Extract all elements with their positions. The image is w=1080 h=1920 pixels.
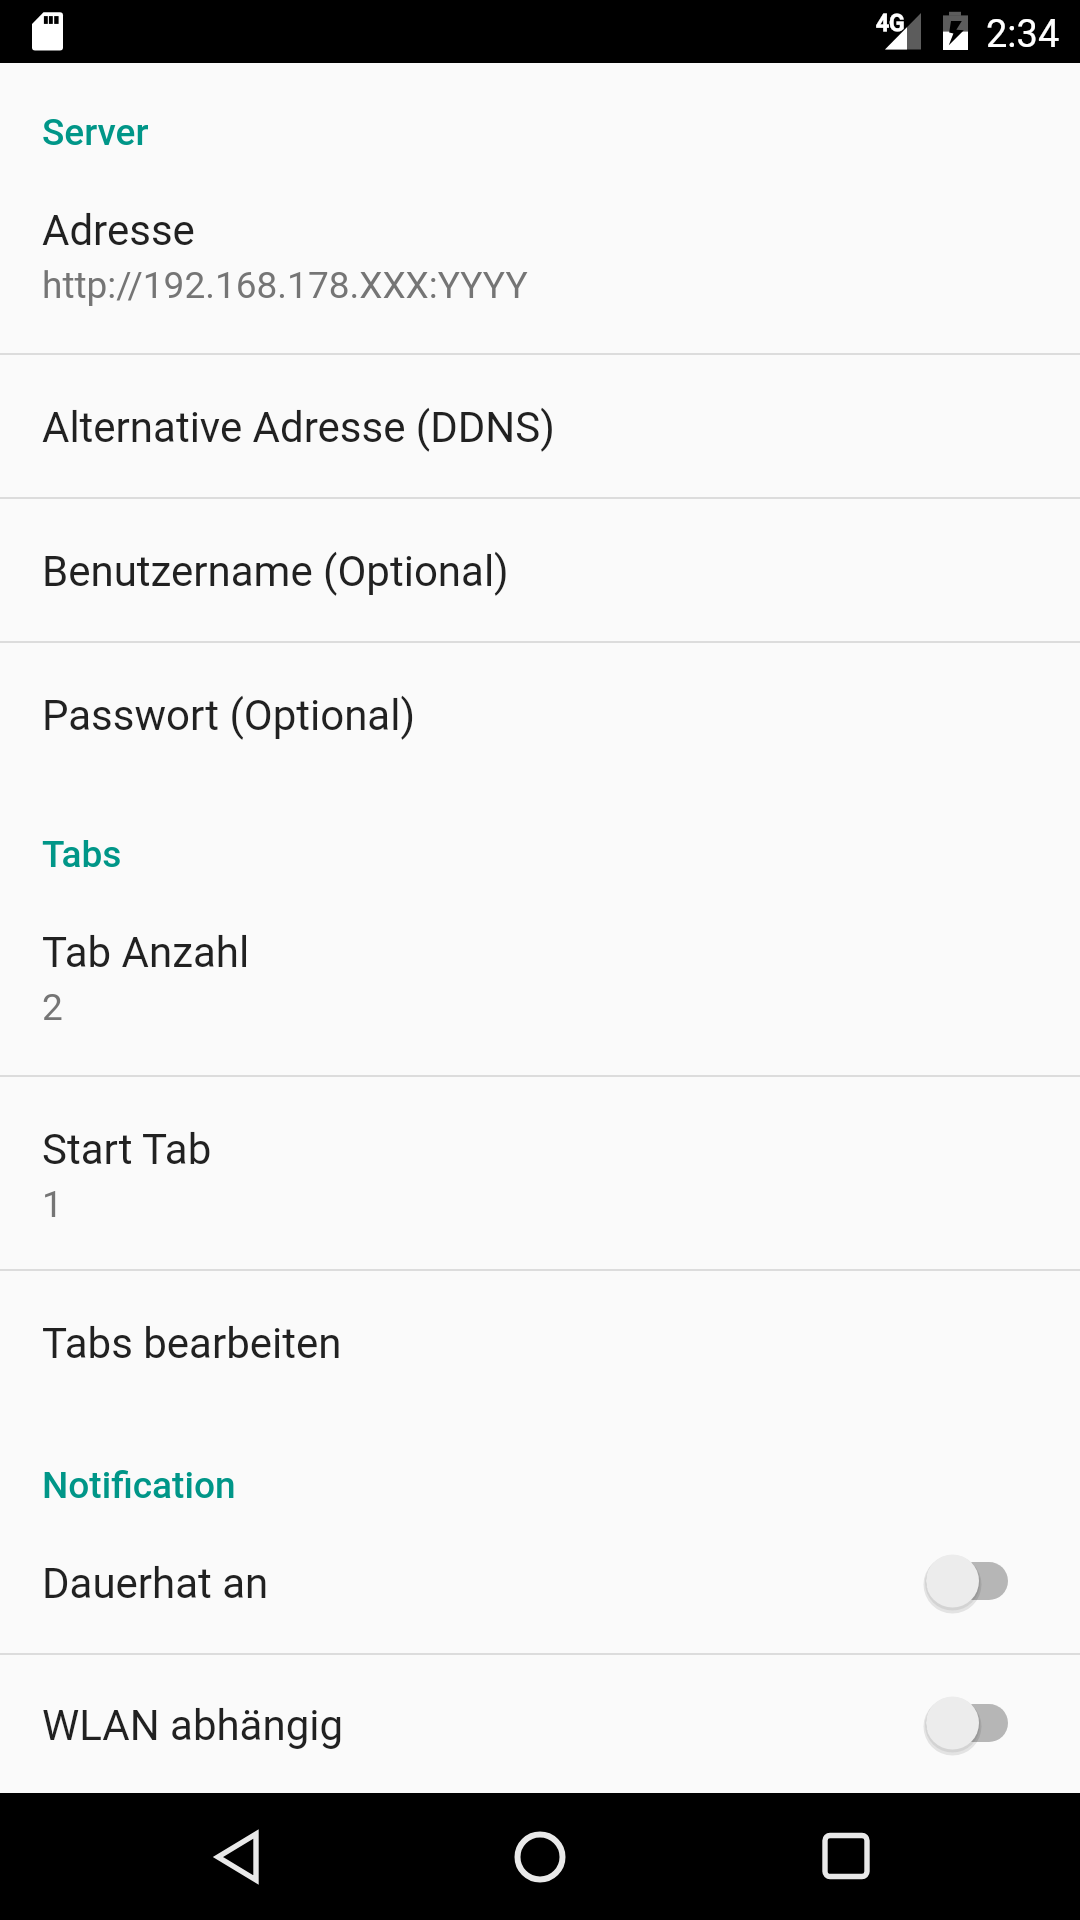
button[interactable]: Alternative Adresse (DDNS) <box>0 353 1080 497</box>
staticText: Notification <box>42 1464 236 1507</box>
staticText: Alternative Adresse (DDNS) <box>42 403 555 452</box>
staticText: 1 <box>42 1183 63 1226</box>
staticText: Tab Anzahl <box>42 928 250 977</box>
button[interactable]: Passwort (Optional) <box>0 641 1080 785</box>
staticText: 2:34 <box>986 12 1060 57</box>
staticText: Tabs <box>42 833 122 876</box>
staticText: WLAN abhängig <box>42 1701 344 1750</box>
button[interactable]: Toggle <box>926 1675 1040 1771</box>
button[interactable]: WLAN abhängig <box>0 1653 1080 1793</box>
button[interactable]: Benutzername (Optional) <box>0 497 1080 641</box>
staticText: Server <box>42 111 149 154</box>
button[interactable]: Home <box>485 1802 595 1912</box>
button[interactable]: Start Tab <box>0 1075 1080 1269</box>
button[interactable]: Toggle <box>926 1533 1040 1629</box>
button[interactable]: Dauerhat an <box>0 1509 1080 1653</box>
staticText: Start Tab <box>42 1125 212 1174</box>
staticText: Tabs bearbeiten <box>42 1319 342 1368</box>
staticText: http://192.168.178.XXX:YYYY <box>42 264 528 307</box>
button[interactable]: Back <box>182 1802 292 1912</box>
button[interactable]: Adresse <box>0 159 1080 353</box>
staticText: Dauerhat an <box>42 1559 269 1608</box>
button[interactable]: Recents <box>792 1802 902 1912</box>
button[interactable]: Tabs bearbeiten <box>0 1269 1080 1413</box>
staticText: Passwort (Optional) <box>42 691 416 740</box>
staticText: 4G <box>876 10 905 37</box>
staticText: Adresse <box>42 206 195 255</box>
staticText: Benutzername (Optional) <box>42 547 509 596</box>
staticText: 2 <box>42 986 63 1029</box>
button[interactable]: Tab Anzahl <box>0 881 1080 1075</box>
